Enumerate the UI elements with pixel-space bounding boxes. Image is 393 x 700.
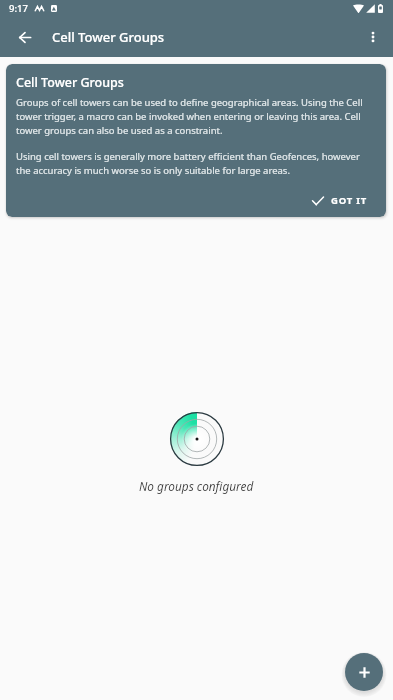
staticText: No groups configured <box>139 478 254 494</box>
staticText: 9:17 <box>9 2 28 15</box>
staticText: Cell Tower Groups <box>16 74 124 91</box>
staticText: Cell Tower Groups <box>52 28 165 46</box>
staticText: GOT IT <box>331 194 368 207</box>
button[interactable]: More options <box>353 17 393 57</box>
button[interactable]: Add cell tower group <box>345 653 383 691</box>
staticText: Using cell towers is generally more batt… <box>16 150 376 177</box>
button[interactable]: Back <box>0 17 46 57</box>
button[interactable]: GOT IT <box>304 189 376 212</box>
staticText: Groups of cell towers can be used to def… <box>16 96 376 137</box>
